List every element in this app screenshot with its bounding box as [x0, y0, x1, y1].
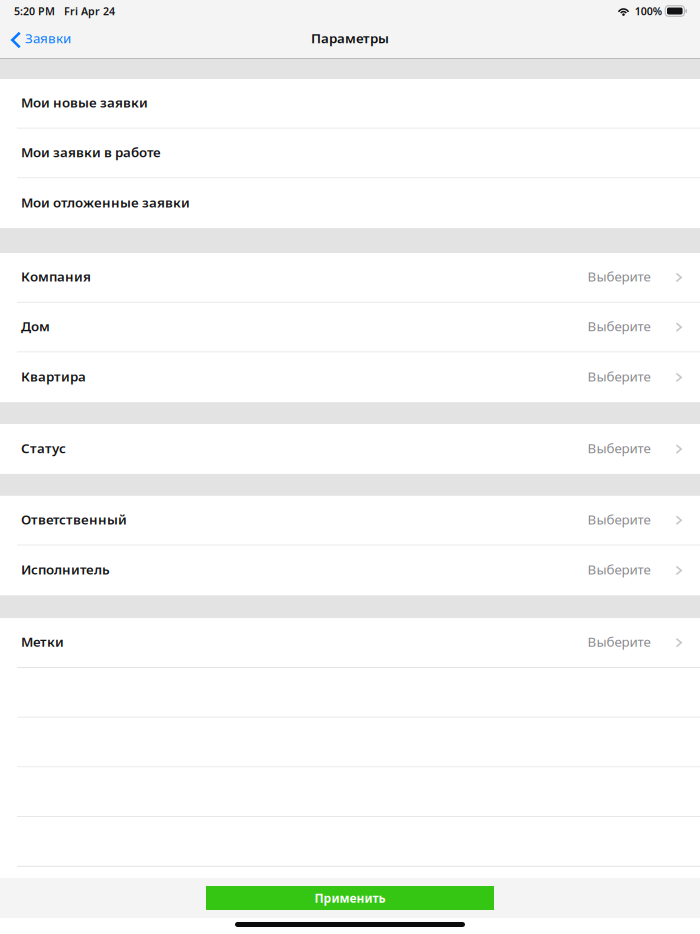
- staticText: Квартира: [21, 367, 86, 385]
- staticText: Применить: [314, 890, 385, 906]
- staticText: Исполнитель: [21, 561, 110, 578]
- button[interactable]: Дом: [0, 303, 700, 352]
- button[interactable]: Применить: [206, 886, 494, 910]
- staticText: Выберите: [588, 317, 651, 335]
- staticText: Компания: [21, 268, 91, 285]
- staticText: Статус: [21, 439, 66, 457]
- button[interactable]: Метки: [0, 618, 700, 668]
- staticText: Дом: [21, 317, 50, 335]
- staticText: Мои новые заявки: [21, 93, 148, 111]
- staticText: Выберите: [588, 510, 651, 528]
- button[interactable]: Ответственный: [0, 496, 700, 546]
- button[interactable]: Мои отложенные заявки: [0, 178, 700, 228]
- button[interactable]: Мои новые заявки: [0, 79, 700, 129]
- staticText: Выберите: [588, 268, 651, 285]
- button[interactable]: Исполнитель: [0, 546, 700, 595]
- staticText: Выберите: [588, 439, 651, 457]
- staticText: 100%: [635, 4, 662, 18]
- staticText: Мои заявки в работе: [21, 143, 161, 161]
- staticText: 5:20 PM: [14, 4, 55, 18]
- button[interactable]: Заявки: [0, 22, 83, 59]
- staticText: Метки: [21, 633, 64, 650]
- staticText: Ответственный: [21, 510, 127, 528]
- staticText: Мои отложенные заявки: [21, 193, 190, 211]
- staticText: Fri Apr 24: [64, 4, 115, 18]
- staticText: Выберите: [588, 561, 651, 578]
- button[interactable]: Статус: [0, 424, 700, 474]
- staticText: Параметры: [311, 29, 389, 47]
- staticText: Выберите: [588, 633, 651, 650]
- staticText: Выберите: [588, 367, 651, 385]
- button[interactable]: Компания: [0, 253, 700, 303]
- button[interactable]: Квартира: [0, 352, 700, 402]
- staticText: Заявки: [25, 29, 71, 47]
- button[interactable]: Мои заявки в работе: [0, 129, 700, 178]
